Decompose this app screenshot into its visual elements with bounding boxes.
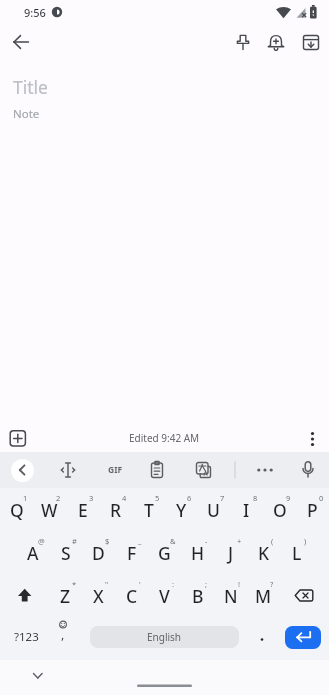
staticText: C [126,584,138,608]
button[interactable]: H [181,531,214,574]
button[interactable]: L [280,531,313,574]
staticText: I [243,498,250,522]
staticText: @ [38,536,45,546]
button[interactable]: R [99,488,132,531]
button[interactable] [6,32,36,54]
button[interactable]: C [115,574,148,617]
staticText: G [158,541,171,565]
button[interactable]: Y [165,488,198,531]
staticText: & [170,536,176,546]
staticText: Y [176,498,187,522]
button[interactable]: U [197,488,230,531]
button[interactable]: X [82,574,115,617]
staticText: ' [139,579,141,589]
staticText: 8 [253,493,258,503]
button[interactable]: Z [49,574,82,617]
staticText: A [27,541,39,565]
button[interactable]: P [296,488,329,531]
button[interactable]: O [263,488,296,531]
button[interactable]: E [66,488,99,531]
button[interactable] [265,32,287,54]
button[interactable] [191,458,215,482]
button[interactable]: M [247,574,280,617]
button[interactable]: A [16,531,49,574]
button[interactable] [4,574,46,617]
staticText: , [61,626,65,642]
staticText: ; [205,579,208,589]
staticText: K [258,541,270,565]
button[interactable]: ?123 [6,617,46,656]
staticText: 3 [89,493,94,503]
button[interactable] [303,429,323,448]
button[interactable] [296,458,320,482]
staticText: : [172,579,175,589]
button[interactable] [283,574,325,617]
staticText: 7 [220,493,225,503]
staticText: 6 [187,493,192,503]
staticText: " [105,579,109,589]
button[interactable] [300,32,322,54]
staticText: Edited 9:42 AM [129,431,200,445]
staticText: ( [271,536,274,546]
staticText: W [41,498,58,522]
button[interactable]: J [214,531,247,574]
button[interactable]: Note [13,106,40,122]
staticText: _ [138,536,142,546]
button[interactable]: F [115,531,148,574]
staticText: 9:56 [24,5,46,20]
staticText: $ [105,536,110,546]
staticText: 0 [319,493,324,503]
button[interactable] [247,617,277,656]
staticText: 9 [286,493,291,503]
button[interactable] [285,626,321,649]
staticText: X [93,584,104,608]
button[interactable]: Q [0,488,33,531]
button[interactable]: B [181,574,214,617]
staticText: 2 [56,493,61,503]
button[interactable] [8,429,28,448]
button[interactable] [145,458,169,482]
button[interactable] [56,458,80,482]
staticText: S [61,541,71,565]
button[interactable] [103,458,127,482]
staticText: ) [304,536,307,546]
staticText: Z [60,584,71,608]
staticText: Q [10,498,24,522]
button[interactable] [253,458,277,482]
staticText: ?123 [14,629,39,645]
button[interactable]: English [90,626,239,648]
staticText: L [292,541,302,565]
button[interactable]: N [214,574,247,617]
staticText: GIF [108,464,123,476]
staticText: ! [238,579,241,589]
button[interactable]: S [49,531,82,574]
staticText: # [72,536,77,546]
staticText: 5 [155,493,160,503]
staticText: M [255,584,272,608]
staticText: H [191,541,205,565]
staticText: T [144,498,154,522]
staticText: 1 [23,493,28,503]
button[interactable]: W [33,488,66,531]
staticText: E [78,498,88,522]
button[interactable]: G [148,531,181,574]
button[interactable]: I [230,488,263,531]
button[interactable]: D [82,531,115,574]
staticText: + [237,536,242,546]
staticText: R [110,498,122,522]
staticText: F [127,541,137,565]
staticText: D [92,541,105,565]
staticText: - [205,536,208,546]
button[interactable]: Title [13,75,48,99]
button[interactable] [232,32,254,54]
button[interactable]: K [247,531,280,574]
button[interactable] [48,617,80,656]
staticText: V [159,584,170,608]
staticText: 4 [122,493,127,503]
button[interactable] [22,662,54,686]
staticText: P [307,498,318,522]
staticText: B [192,584,204,608]
button[interactable]: T [132,488,165,531]
button[interactable] [11,459,34,482]
button[interactable]: V [148,574,181,617]
